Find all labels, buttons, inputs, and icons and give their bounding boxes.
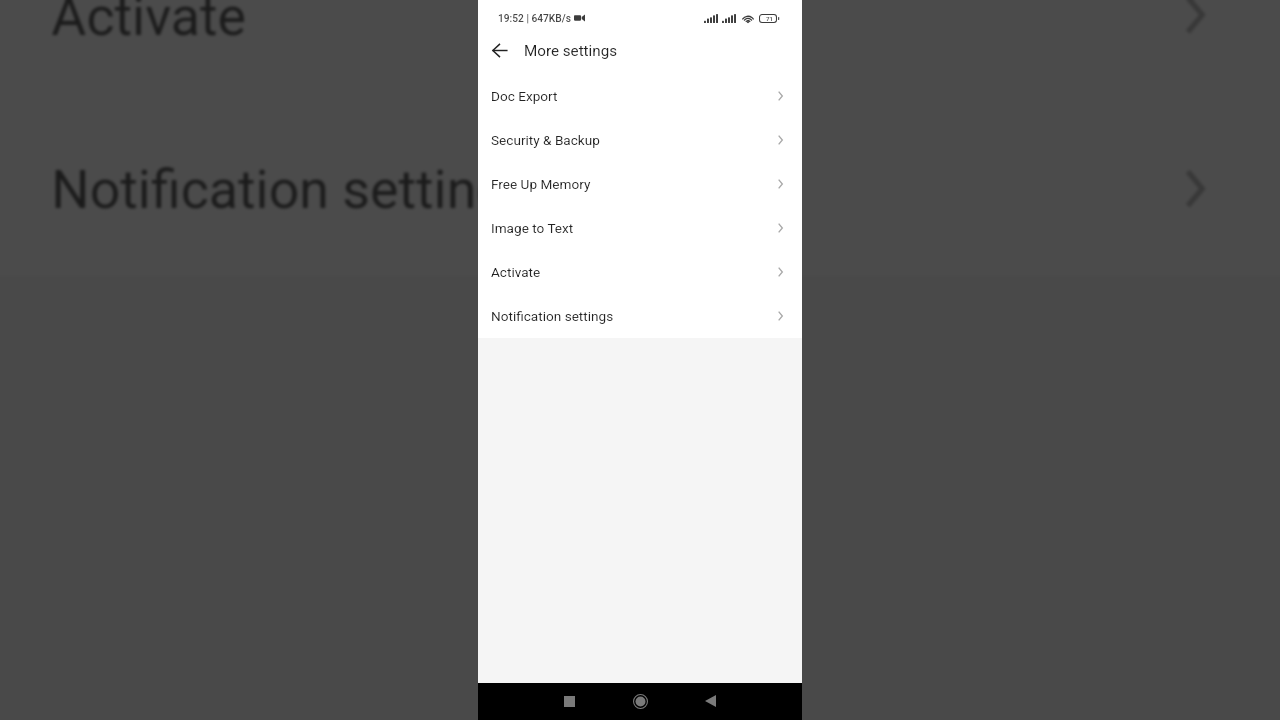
button[interactable]: Back [485, 35, 515, 65]
staticText: Image to Text [491, 220, 574, 236]
button[interactable]: Back [697, 688, 723, 714]
staticText: More settings [524, 42, 618, 60]
button[interactable]: Activate [478, 250, 802, 294]
staticText: 71 [766, 15, 774, 22]
staticText: 19:52 | 647KB/s [498, 13, 571, 25]
staticText: Doc Export [491, 88, 558, 104]
button[interactable]: Recent apps [556, 688, 582, 714]
button[interactable]: Home [627, 688, 653, 714]
staticText: Notification settings [51, 157, 537, 220]
staticText: Notification settings [491, 308, 614, 324]
staticText: Activate [491, 264, 541, 280]
staticText: Activate [51, 0, 249, 46]
button[interactable]: Activate [0, 0, 1280, 102]
button[interactable]: Notification settings [478, 294, 802, 338]
staticText: Security & Backup [491, 132, 600, 148]
button[interactable]: Image to Text [478, 206, 802, 250]
button[interactable]: Doc Export [478, 74, 802, 118]
button[interactable]: Free Up Memory [478, 162, 802, 206]
staticText: Free Up Memory [491, 176, 591, 192]
button[interactable]: Security & Backup [478, 118, 802, 162]
button[interactable]: Notification settings [0, 102, 1280, 276]
